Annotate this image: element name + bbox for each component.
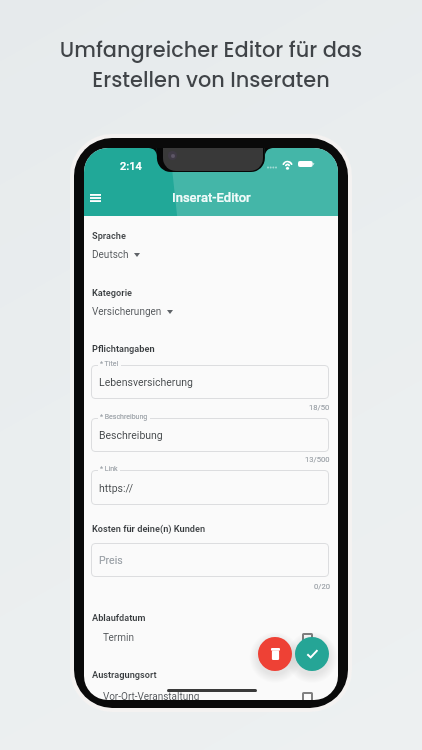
- button[interactable]: Termin: [84, 632, 338, 645]
- button[interactable]: [91, 543, 329, 577]
- staticText: Pflichtangaben: [92, 343, 155, 354]
- staticText: Lebensversicherung: [99, 376, 193, 388]
- staticText: Termin: [103, 632, 134, 644]
- staticText: 18/50: [309, 403, 330, 412]
- staticText: * Link: [100, 465, 118, 473]
- staticText: * Titel: [100, 360, 119, 368]
- staticText: Versicherungen: [92, 306, 162, 318]
- button[interactable]: Vor-Ort-Veranstaltung: [84, 691, 338, 700]
- staticText: Vor-Ort-Veranstaltung: [103, 691, 200, 700]
- staticText: Sprache: [92, 230, 126, 241]
- staticText: Ablaufdatum: [92, 612, 146, 623]
- button[interactable]: Save: [295, 637, 329, 671]
- button[interactable]: [91, 365, 329, 399]
- staticText: https://: [99, 482, 134, 494]
- staticText: Deutsch: [92, 249, 129, 261]
- button[interactable]: [91, 470, 329, 505]
- staticText: 2:14: [120, 160, 142, 173]
- staticText: 0/20: [314, 582, 330, 591]
- staticText: Preis: [99, 554, 123, 566]
- button[interactable]: Versicherungen: [92, 306, 173, 318]
- staticText: Umfangreicher Editor für das Erstellen v…: [0, 35, 422, 94]
- staticText: Beschreibung: [99, 429, 163, 441]
- button[interactable]: Delete: [258, 637, 292, 671]
- button[interactable]: Menu: [84, 181, 112, 215]
- button[interactable]: Deutsch: [92, 249, 140, 261]
- staticText: Kosten für deine(n) Kunden: [92, 523, 206, 534]
- staticText: Inserat-Editor: [172, 190, 251, 205]
- staticText: 13/500: [305, 455, 330, 464]
- staticText: Kategorie: [92, 287, 133, 298]
- staticText: * Beschreibung: [100, 413, 148, 421]
- staticText: Austragungsort: [92, 669, 157, 680]
- button[interactable]: [91, 418, 329, 452]
